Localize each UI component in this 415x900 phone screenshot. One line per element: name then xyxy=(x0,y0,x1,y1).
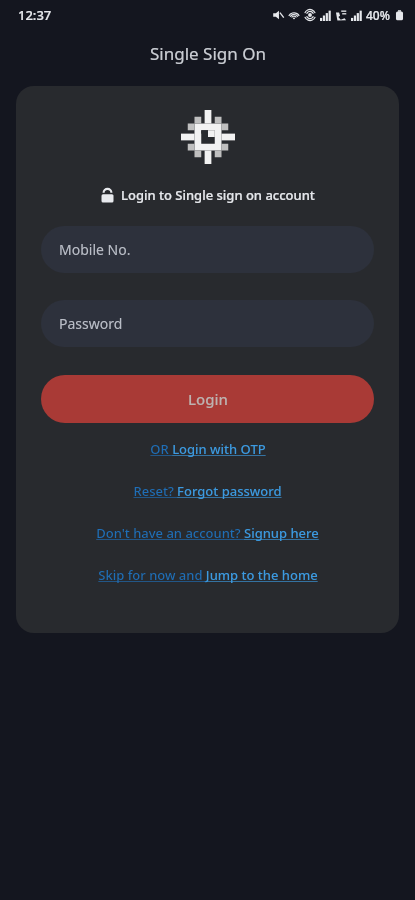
staticText: Skip for now and Jump to the home xyxy=(98,566,318,584)
button[interactable]: Password xyxy=(41,300,374,347)
button[interactable]: Don't have an account? Signup here xyxy=(41,522,374,544)
button[interactable]: Reset? Forgot password xyxy=(41,480,374,502)
other: Single Sign On logo xyxy=(181,110,235,164)
button[interactable]: Skip for now and Jump to the home xyxy=(41,564,374,586)
staticText: Single Sign On xyxy=(150,42,266,65)
staticText: Login xyxy=(188,389,228,409)
staticText: 40% xyxy=(366,7,390,23)
button[interactable]: OR Login with OTP xyxy=(41,438,374,460)
staticText: 12:37 xyxy=(18,6,52,24)
staticText: Mobile No. xyxy=(59,240,131,259)
staticText: Password xyxy=(59,314,123,333)
button[interactable]: Login xyxy=(41,375,374,423)
button[interactable]: Mobile No. xyxy=(41,226,374,273)
staticText: Don't have an account? Signup here xyxy=(96,524,319,542)
staticText: Login to Single sign on account xyxy=(121,186,315,204)
staticText: OR Login with OTP xyxy=(150,440,266,458)
staticText: Reset? Forgot password xyxy=(133,482,282,500)
